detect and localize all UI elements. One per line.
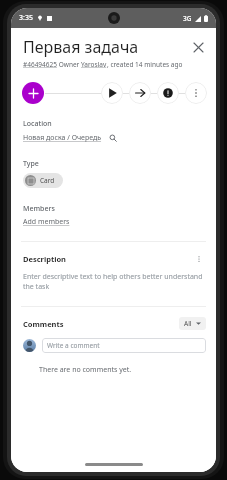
staticText: Первая задача xyxy=(23,36,188,58)
staticText: There are no comments yet. xyxy=(39,365,132,375)
staticText: Type xyxy=(23,159,39,169)
button[interactable]: Info xyxy=(157,82,179,104)
button[interactable]: Add xyxy=(22,82,44,104)
button[interactable]: Description options xyxy=(192,252,206,266)
staticText: Description xyxy=(23,254,192,264)
staticText: Card xyxy=(40,176,55,185)
button[interactable]: Yaroslav xyxy=(81,60,107,69)
staticText: All xyxy=(184,319,192,328)
staticText: Members xyxy=(23,204,55,214)
button[interactable]: Close xyxy=(188,37,208,57)
button[interactable]: Add members xyxy=(23,217,70,227)
staticText: , created 14 minutes ago xyxy=(107,60,183,69)
staticText: Comments xyxy=(23,319,179,329)
button[interactable]: Start xyxy=(101,82,123,104)
staticText: Write a comment xyxy=(47,341,100,350)
staticText: 3:35 xyxy=(19,13,33,23)
staticText: Enter descriptive text to help others be… xyxy=(23,272,204,292)
button[interactable]: Search xyxy=(107,132,118,143)
button[interactable]: #46494625 xyxy=(23,60,57,69)
button[interactable]: Write a comment xyxy=(42,338,206,353)
staticText: Owner xyxy=(57,60,81,69)
button[interactable]: More options xyxy=(185,82,207,104)
staticText: Location xyxy=(23,119,52,129)
button[interactable]: All xyxy=(179,317,206,330)
button[interactable]: Новая доска / Очередь xyxy=(23,133,102,143)
button[interactable]: Move xyxy=(129,82,151,104)
staticText: 3G xyxy=(183,14,192,23)
button[interactable]: Card xyxy=(23,173,63,188)
